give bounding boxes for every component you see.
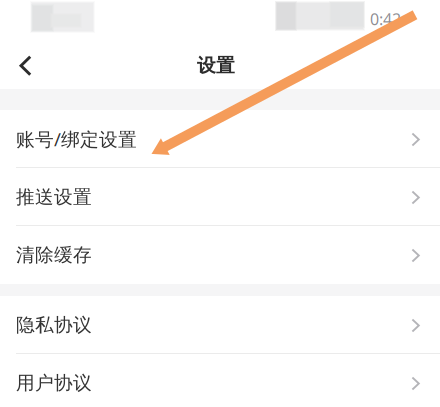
staticText: 账号/绑定设置 — [16, 127, 137, 151]
button[interactable]: 清除缓存 — [0, 226, 440, 284]
button[interactable]: 用户协议 — [0, 354, 440, 407]
button[interactable]: 隐私协议 — [0, 296, 440, 354]
staticText: 设置 — [197, 54, 235, 77]
staticText: 推送设置 — [16, 185, 92, 208]
staticText: 0:42 — [370, 8, 401, 30]
staticText: 用户协议 — [16, 371, 92, 394]
staticText: 隐私协议 — [16, 313, 92, 336]
button[interactable]: Back — [0, 42, 48, 89]
button[interactable]: 账号/绑定设置 — [0, 110, 440, 168]
button[interactable]: 推送设置 — [0, 168, 440, 226]
staticText: 清除缓存 — [16, 243, 92, 266]
